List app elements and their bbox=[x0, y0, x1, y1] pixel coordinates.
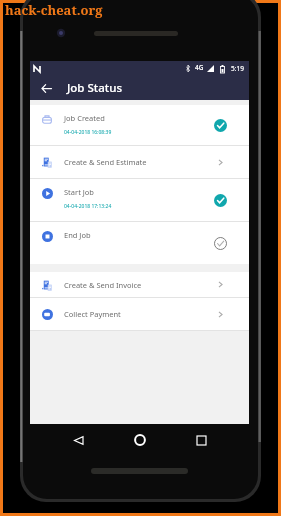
staticText: 5:19 bbox=[231, 64, 244, 73]
staticText: End Job bbox=[64, 230, 91, 240]
button[interactable]: Navigate up bbox=[36, 78, 56, 98]
button[interactable]: Home bbox=[127, 427, 153, 453]
staticText: Create & Send Estimate bbox=[64, 157, 214, 167]
staticText: 04-04-2018 17:13:24 bbox=[64, 203, 112, 210]
button[interactable]: Start Job bbox=[30, 179, 249, 221]
staticText: Collect Payment bbox=[64, 309, 214, 319]
staticText: 04-04-2018 16:08:39 bbox=[64, 129, 112, 136]
button[interactable]: Create & Send Invoice bbox=[30, 272, 249, 297]
button[interactable]: End Job bbox=[30, 222, 249, 264]
staticText: Create & Send Invoice bbox=[64, 280, 214, 290]
button[interactable]: Job Created bbox=[30, 105, 249, 145]
staticText: Start Job bbox=[64, 187, 94, 197]
button[interactable]: Recent apps bbox=[188, 427, 214, 453]
button[interactable]: Create & Send Estimate bbox=[30, 146, 249, 178]
button[interactable]: Back bbox=[65, 427, 91, 453]
button[interactable]: Collect Payment bbox=[30, 298, 249, 330]
staticText: Job Created bbox=[64, 113, 105, 123]
staticText: hack-cheat.org bbox=[5, 1, 103, 19]
staticText: Job Status bbox=[67, 80, 122, 96]
staticText: 4G bbox=[195, 63, 204, 72]
